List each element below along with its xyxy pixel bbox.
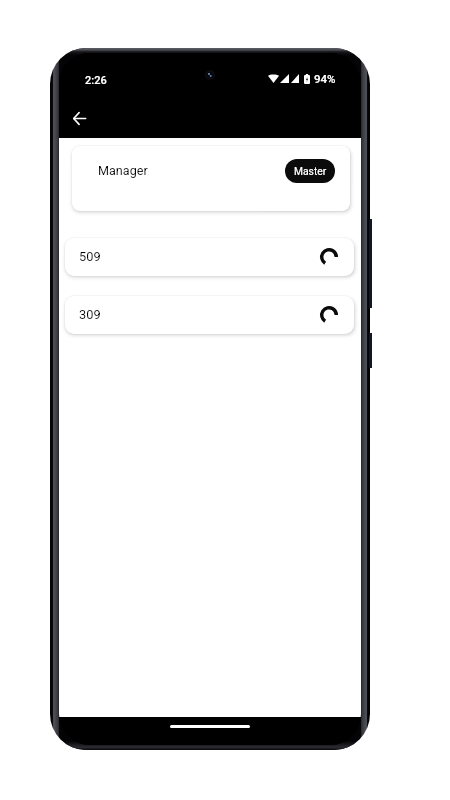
staticText: Manager	[98, 163, 148, 178]
button[interactable]: Master	[285, 159, 335, 183]
staticText: Master	[294, 165, 327, 177]
staticText: 94%	[314, 72, 336, 85]
staticText: 309	[79, 307, 101, 322]
button[interactable]: 509	[65, 238, 354, 276]
button[interactable]: Manager	[72, 146, 350, 211]
staticText: 509	[79, 249, 101, 264]
staticText: 2:26	[85, 74, 107, 87]
button[interactable]: Back	[59, 98, 100, 139]
button[interactable]: 309	[65, 296, 354, 334]
